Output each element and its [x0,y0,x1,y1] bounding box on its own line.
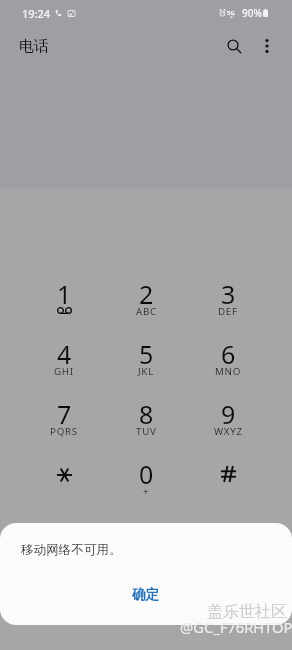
staticText: GHI [54,365,74,378]
button[interactable]: 9 [187,396,269,456]
staticText: 电话 [19,37,49,56]
staticText: MNO [215,365,242,378]
staticText: 5G [227,9,235,17]
staticText: 8 [139,397,154,431]
staticText: 19:24 [22,6,51,21]
staticText: PQRS [50,425,78,438]
staticText: 确定 [132,586,160,603]
staticText: 2 [139,277,154,311]
staticText: 3 [221,277,236,311]
staticText: WXYZ [214,425,243,438]
button[interactable]: 8 [105,396,187,456]
button[interactable]: More options [251,30,283,62]
button[interactable]: 4 [23,336,105,396]
staticText: 移动网络不可用。 [21,542,122,558]
staticText: @GC_F76RHTOP [180,617,292,637]
button[interactable]: 0 [105,456,187,516]
button[interactable]: 6 [187,336,269,396]
button[interactable]: 7 [23,396,105,456]
staticText: 6 [221,337,236,371]
staticText: TUV [136,425,157,438]
staticText: 7 [57,397,72,431]
staticText: DEF [218,305,238,318]
staticText: ABC [136,305,157,318]
staticText: 盖乐世社区 [207,602,287,622]
staticText: 90% [242,6,262,20]
button[interactable]: Search [218,30,250,62]
staticText: 1 [57,277,72,311]
staticText: + [143,485,150,498]
staticText: 0 [139,457,154,491]
button[interactable] [23,456,105,516]
staticText: 9 [221,397,236,431]
staticText: JKL [138,365,154,378]
button[interactable]: 1 [23,276,105,336]
button[interactable]: 2 [105,276,187,336]
button[interactable]: 确定 [0,576,292,612]
staticText: 4 [57,337,72,371]
staticText: 5 [139,337,154,371]
button[interactable] [187,456,269,516]
button[interactable]: 5 [105,336,187,396]
button[interactable]: 3 [187,276,269,336]
